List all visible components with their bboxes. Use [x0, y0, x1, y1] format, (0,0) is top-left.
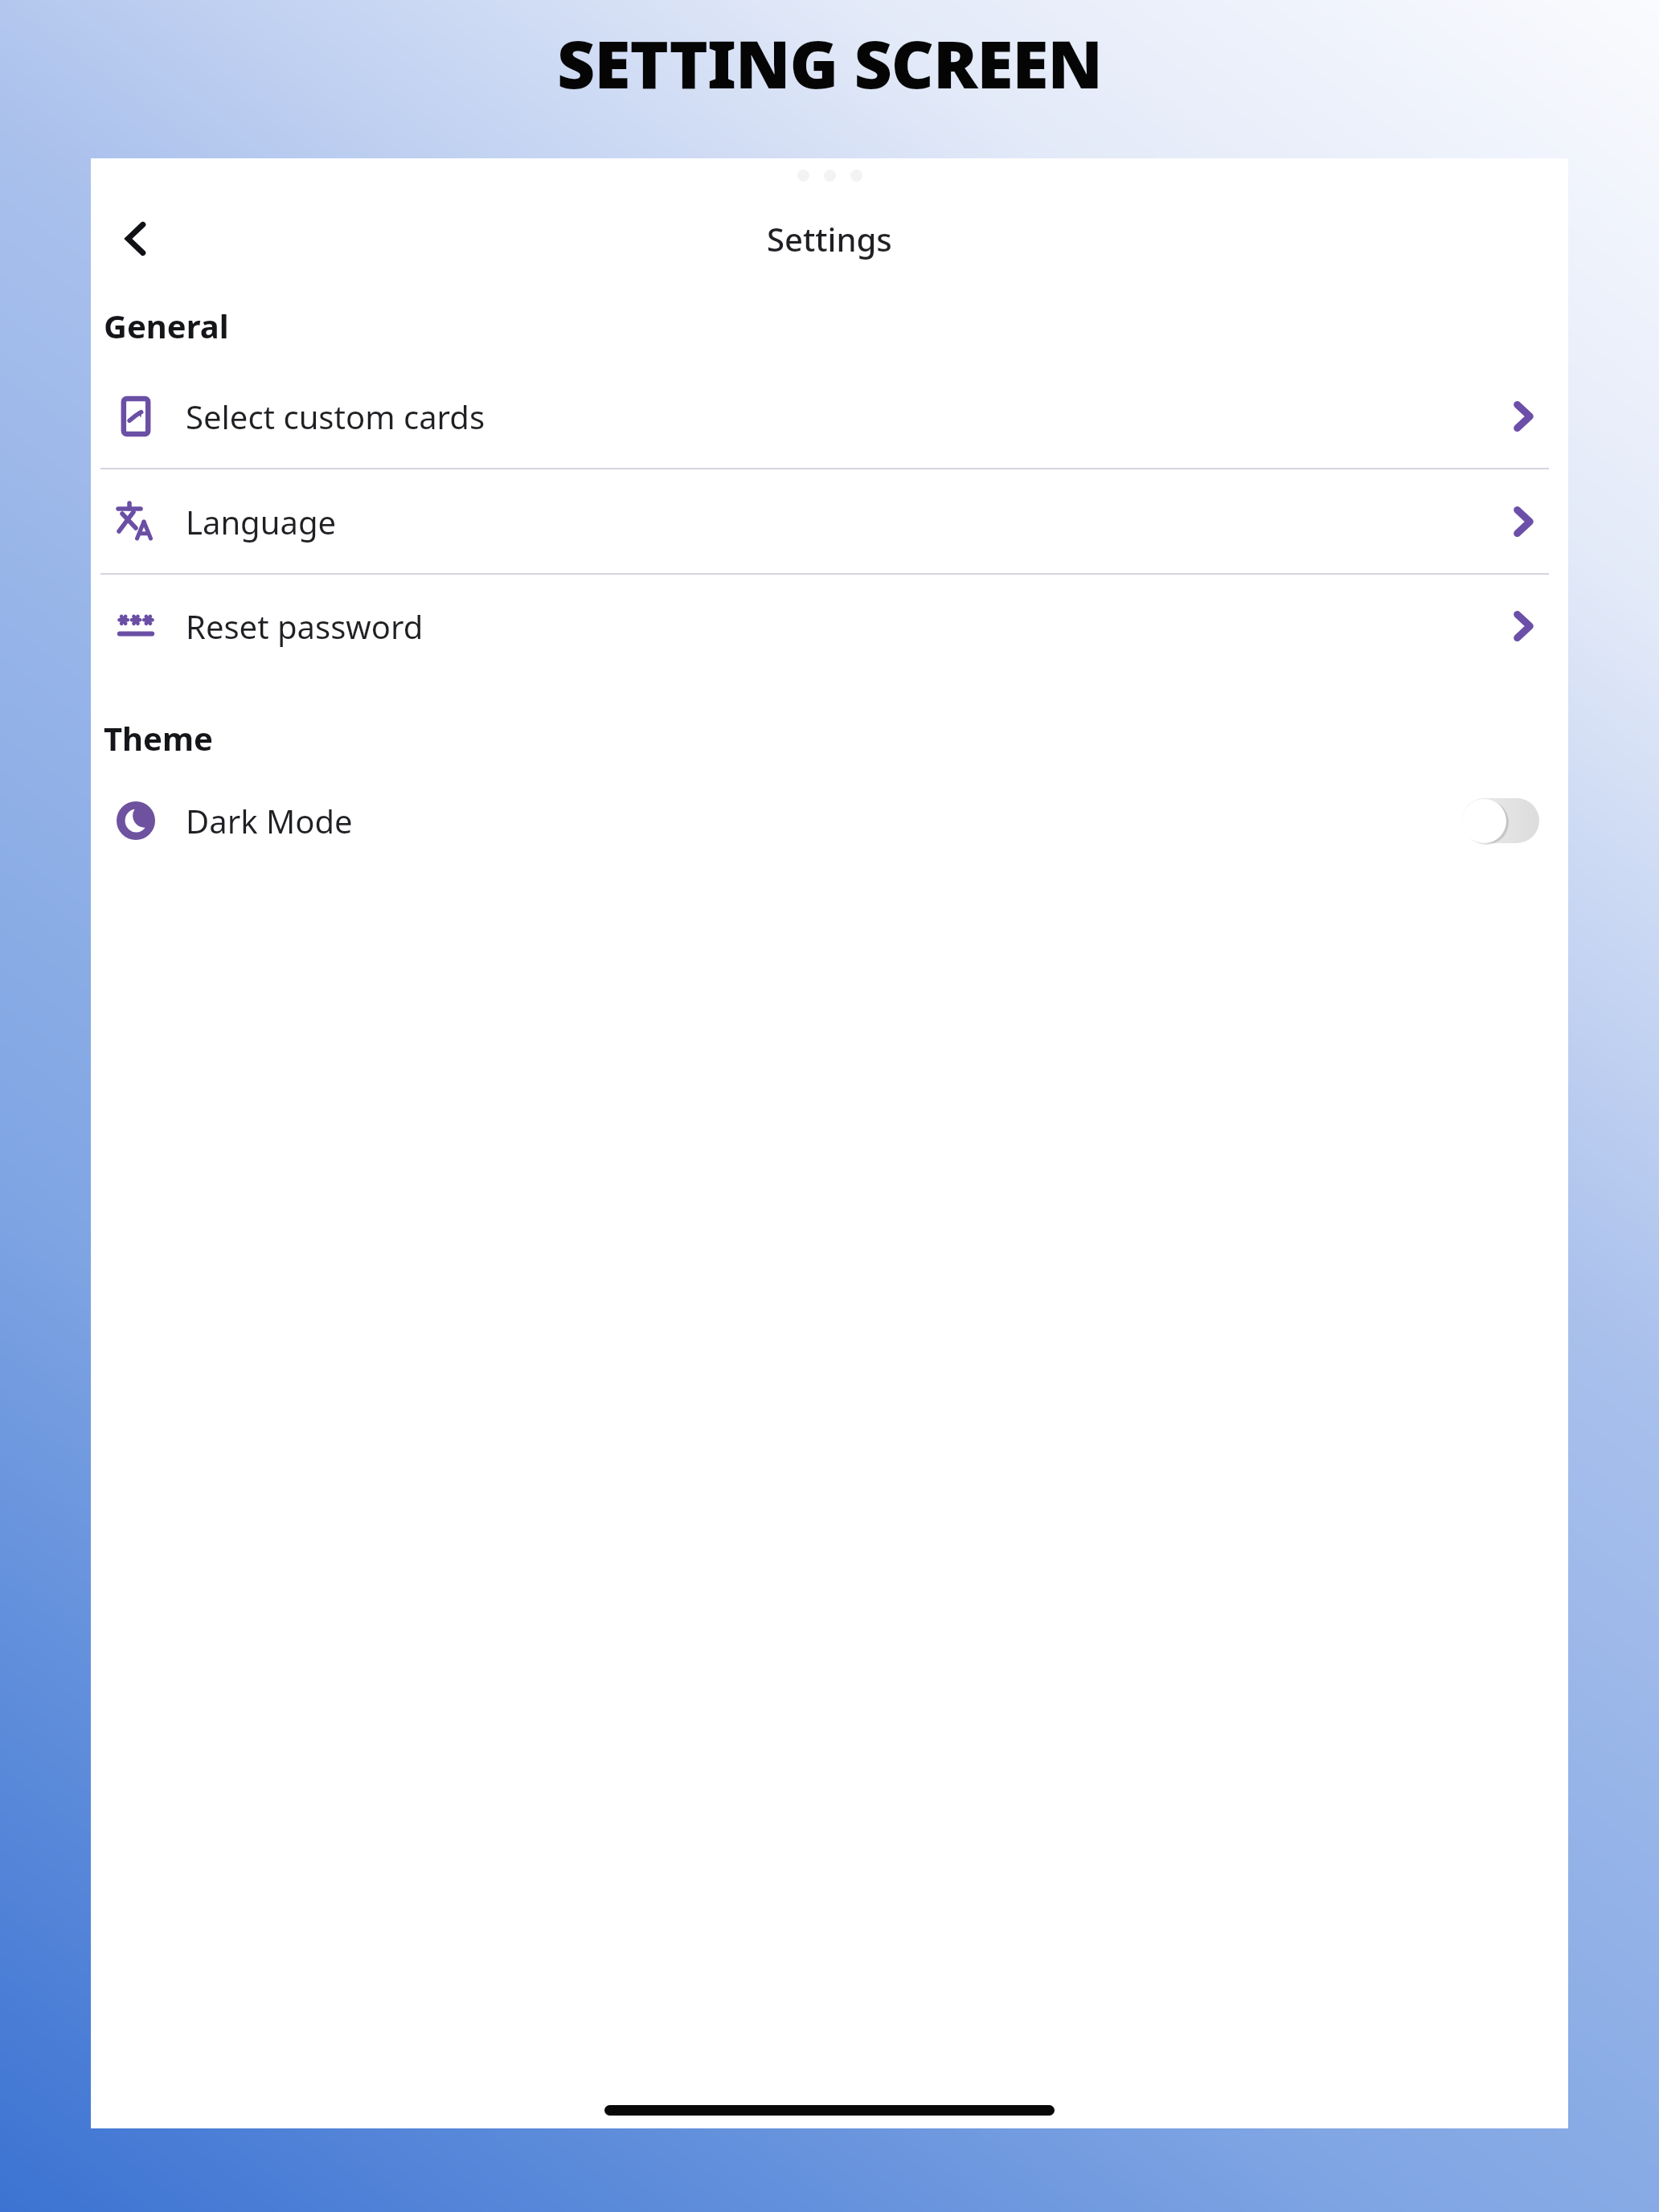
staticText: Settings	[767, 217, 892, 260]
button[interactable]: Dark Mode	[91, 777, 1568, 864]
staticText: Language	[186, 500, 337, 543]
button[interactable]: Language	[91, 469, 1568, 573]
staticText: Select custom cards	[186, 395, 485, 438]
button[interactable]: Back	[97, 200, 174, 277]
staticText: General	[104, 304, 229, 347]
button[interactable]: Dark Mode toggle	[1462, 798, 1539, 843]
button[interactable]: Select custom cards	[91, 365, 1568, 468]
staticText: SETTING SCREEN	[557, 18, 1102, 108]
staticText: Theme	[104, 716, 213, 760]
staticText: Dark Mode	[186, 799, 353, 842]
staticText: Reset password	[186, 604, 424, 648]
button[interactable]: Reset password	[91, 575, 1568, 678]
